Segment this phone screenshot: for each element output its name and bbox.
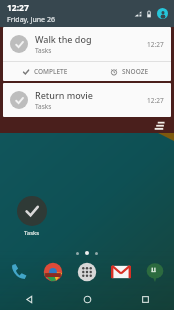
- button[interactable]: Home: [58, 289, 116, 310]
- staticText: 12:27: [7, 2, 29, 14]
- button[interactable]: Notification settings: [152, 118, 166, 132]
- button[interactable]: Back: [0, 289, 58, 310]
- staticText: Tasks: [35, 46, 52, 55]
- button[interactable]: Phone: [6, 259, 32, 285]
- button[interactable]: Chrome: [40, 259, 66, 285]
- button[interactable]: Hangouts: [142, 259, 168, 285]
- staticText: SNOOZE: [122, 67, 149, 76]
- button[interactable]: SNOOZE: [87, 62, 171, 81]
- staticText: Tasks: [35, 102, 52, 111]
- staticText: 12:27: [147, 40, 164, 49]
- button[interactable]: Tasks app: [10, 196, 54, 237]
- button[interactable]: All apps: [74, 259, 100, 285]
- button[interactable]: Recents: [116, 289, 174, 310]
- staticText: Tasks: [24, 229, 40, 237]
- staticText: COMPLETE: [34, 67, 68, 76]
- staticText: 12:27: [147, 96, 164, 105]
- staticText: Walk the dog: [35, 33, 92, 45]
- button[interactable]: Gmail: [108, 259, 134, 285]
- button[interactable]: Return movie: [3, 83, 171, 117]
- staticText: Return movie: [35, 89, 93, 101]
- staticText: Friday, June 26: [7, 15, 55, 25]
- button[interactable]: COMPLETE: [3, 62, 87, 81]
- button[interactable]: Walk the dog: [3, 27, 171, 81]
- button[interactable]: User profile: [157, 8, 168, 19]
